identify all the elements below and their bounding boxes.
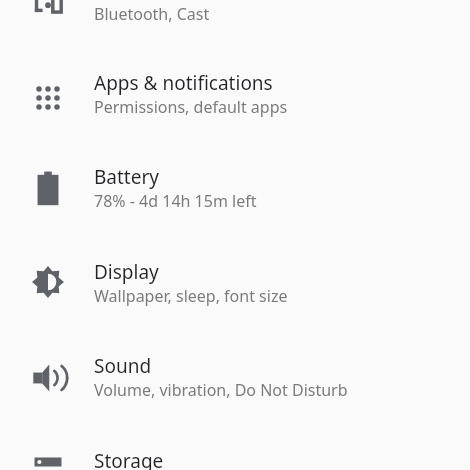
other: Battery	[0, 156, 470, 250]
button[interactable]: Apps and notifications	[0, 62, 470, 156]
other: Storage	[0, 440, 470, 470]
staticText: Apps & notifications	[94, 70, 273, 96]
button[interactable]: Display	[0, 251, 470, 345]
button[interactable]: Sound	[0, 345, 470, 439]
staticText: Sound	[94, 353, 152, 379]
other: Connected devices	[0, 0, 470, 42]
staticText: Storage	[94, 448, 164, 470]
other: Sound	[0, 345, 470, 439]
staticText: Display	[94, 259, 159, 285]
staticText: Bluetooth, Cast	[94, 3, 210, 25]
button[interactable]: Battery	[0, 156, 470, 250]
staticText: Permissions, default apps	[94, 96, 288, 118]
staticText: Volume, vibration, Do Not Disturb	[94, 379, 348, 401]
staticText: Battery	[94, 164, 159, 190]
other: Display	[0, 251, 470, 345]
staticText: 78% - 4d 14h 15m left	[94, 190, 257, 212]
staticText: Wallpaper, sleep, font size	[94, 285, 288, 307]
button[interactable]: Connected devices	[0, 0, 470, 42]
other: Apps and notifications	[0, 62, 470, 156]
button[interactable]: Storage	[0, 440, 470, 470]
